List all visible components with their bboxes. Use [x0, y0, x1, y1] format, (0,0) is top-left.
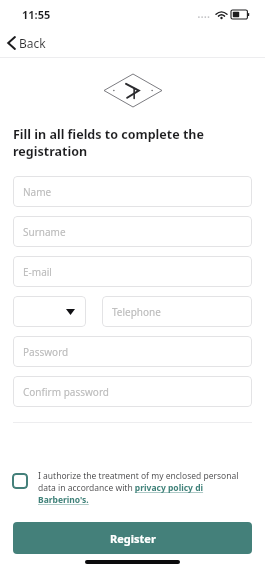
button[interactable]: Name: [13, 176, 252, 207]
staticText: Surname: [23, 225, 66, 239]
staticText: Name: [23, 185, 52, 199]
button[interactable]: E-mail: [13, 256, 252, 287]
staticText: 11:55: [22, 7, 51, 22]
staticText: Register: [110, 531, 156, 546]
staticText: I authorize the treatment of my enclosed…: [38, 470, 253, 506]
button[interactable]: Surname: [13, 216, 252, 247]
button[interactable]: Back: [0, 32, 56, 54]
staticText: Back: [19, 35, 46, 51]
button[interactable]: Password: [13, 336, 252, 367]
staticText: Password: [23, 345, 69, 359]
button[interactable]: Country prefix: [13, 296, 86, 327]
button[interactable]: Telephone: [102, 296, 252, 327]
staticText: Confirm password: [23, 385, 109, 399]
staticText: E-mail: [23, 265, 52, 279]
button[interactable]: Confirm password: [13, 376, 252, 407]
staticText: Telephone: [112, 305, 161, 319]
button[interactable]: Register: [13, 522, 252, 554]
button[interactable]: I authorize the treatment of my enclosed…: [0, 470, 265, 506]
staticText: Fill in all fields to complete the regis…: [13, 126, 255, 160]
